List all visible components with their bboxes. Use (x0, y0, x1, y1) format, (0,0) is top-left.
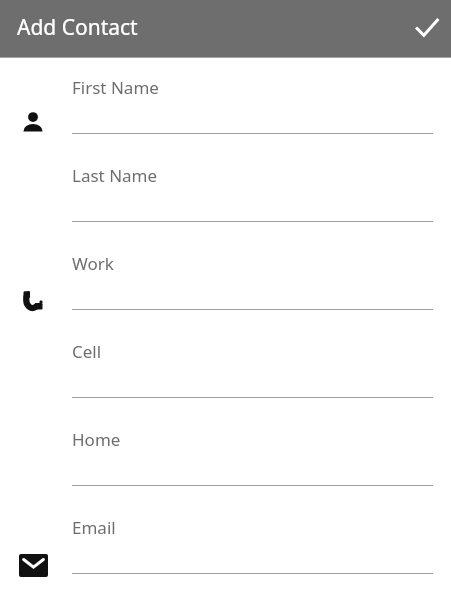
button[interactable]: Email (19, 554, 48, 577)
staticText: First Name (72, 76, 159, 99)
button[interactable]: Add Contact (17, 13, 138, 42)
staticText: Work (72, 252, 114, 275)
button[interactable]: Phone (21, 288, 46, 313)
staticText: Home (72, 428, 121, 451)
button[interactable] (62, 332, 442, 408)
button[interactable] (62, 244, 442, 320)
button[interactable] (62, 68, 442, 144)
button[interactable]: Save contact (405, 6, 449, 50)
button[interactable]: Name (21, 110, 45, 134)
button[interactable] (62, 156, 442, 232)
button[interactable] (62, 420, 442, 496)
staticText: Email (72, 516, 116, 539)
staticText: Last Name (72, 164, 158, 187)
staticText: Cell (72, 340, 102, 363)
button[interactable] (62, 508, 442, 584)
staticText: Add Contact (17, 13, 138, 42)
